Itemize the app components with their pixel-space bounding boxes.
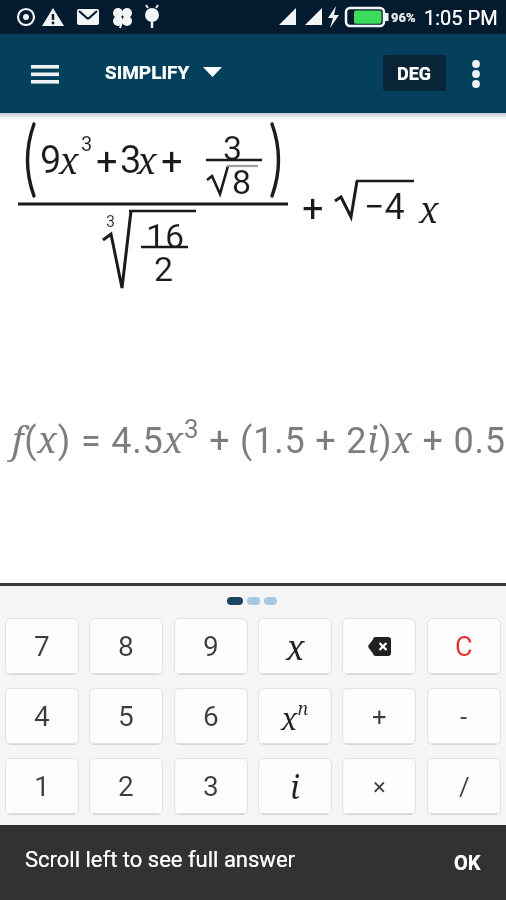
button[interactable]: [458, 52, 496, 96]
button[interactable]: 1: [5, 758, 79, 815]
button[interactable]: [342, 618, 416, 675]
staticText: 7: [34, 630, 50, 663]
button[interactable]: xn: [258, 688, 332, 745]
staticText: x: [419, 185, 439, 234]
staticText: ×: [373, 773, 386, 801]
button[interactable]: 7: [5, 618, 79, 675]
staticText: 3: [120, 138, 142, 183]
staticText: /: [459, 772, 470, 802]
staticText: 1:05 PM: [424, 6, 498, 29]
staticText: x: [59, 136, 79, 185]
staticText: 8: [118, 630, 134, 663]
staticText: x: [286, 624, 305, 670]
staticText: 3: [203, 770, 219, 803]
staticText: SIMPLIFY: [105, 61, 190, 83]
staticText: -: [460, 702, 468, 732]
button[interactable]: 4: [5, 688, 79, 745]
button[interactable]: 3: [174, 758, 248, 815]
staticText: 3: [81, 132, 93, 155]
button[interactable]: SIMPLIFY: [100, 54, 230, 94]
button[interactable]: 6: [174, 688, 248, 745]
button[interactable]: i: [258, 758, 332, 815]
staticText: xn: [281, 696, 309, 738]
button[interactable]: /: [427, 758, 501, 815]
staticText: i: [290, 765, 300, 809]
staticText: 2: [154, 249, 174, 289]
button[interactable]: DEG: [383, 55, 446, 91]
staticText: f(x) = 4.5x3 + (1.5 + 2i)x + 0.5: [12, 414, 506, 463]
button[interactable]: 8: [89, 618, 163, 675]
staticText: 8: [232, 162, 252, 202]
button[interactable]: C: [427, 618, 501, 675]
staticText: −4: [364, 186, 405, 228]
button[interactable]: +: [342, 688, 416, 745]
staticText: 96%: [391, 10, 416, 25]
staticText: 2: [118, 770, 134, 803]
button[interactable]: ×: [342, 758, 416, 815]
staticText: +: [96, 140, 118, 185]
staticText: OK: [454, 851, 481, 874]
button[interactable]: x: [258, 618, 332, 675]
button[interactable]: 9: [174, 618, 248, 675]
staticText: 9: [40, 138, 62, 183]
button[interactable]: 2: [89, 758, 163, 815]
staticText: 9: [203, 630, 219, 663]
staticText: x: [137, 136, 157, 185]
staticText: DEG: [397, 63, 432, 84]
staticText: 16: [146, 216, 185, 256]
staticText: C: [455, 631, 473, 663]
button[interactable]: 5: [89, 688, 163, 745]
staticText: 1: [34, 770, 50, 803]
staticText: +: [372, 702, 387, 732]
button[interactable]: [18, 52, 72, 96]
staticText: +: [302, 187, 324, 232]
button[interactable]: OK: [437, 833, 497, 891]
staticText: 5: [118, 700, 134, 733]
staticText: 4: [34, 700, 50, 733]
staticText: +: [161, 140, 183, 185]
staticText: 3: [223, 128, 243, 168]
staticText: Scroll left to see full answer: [25, 847, 296, 873]
staticText: 6: [203, 700, 219, 733]
button[interactable]: -: [427, 688, 501, 745]
staticText: 3: [106, 212, 115, 231]
